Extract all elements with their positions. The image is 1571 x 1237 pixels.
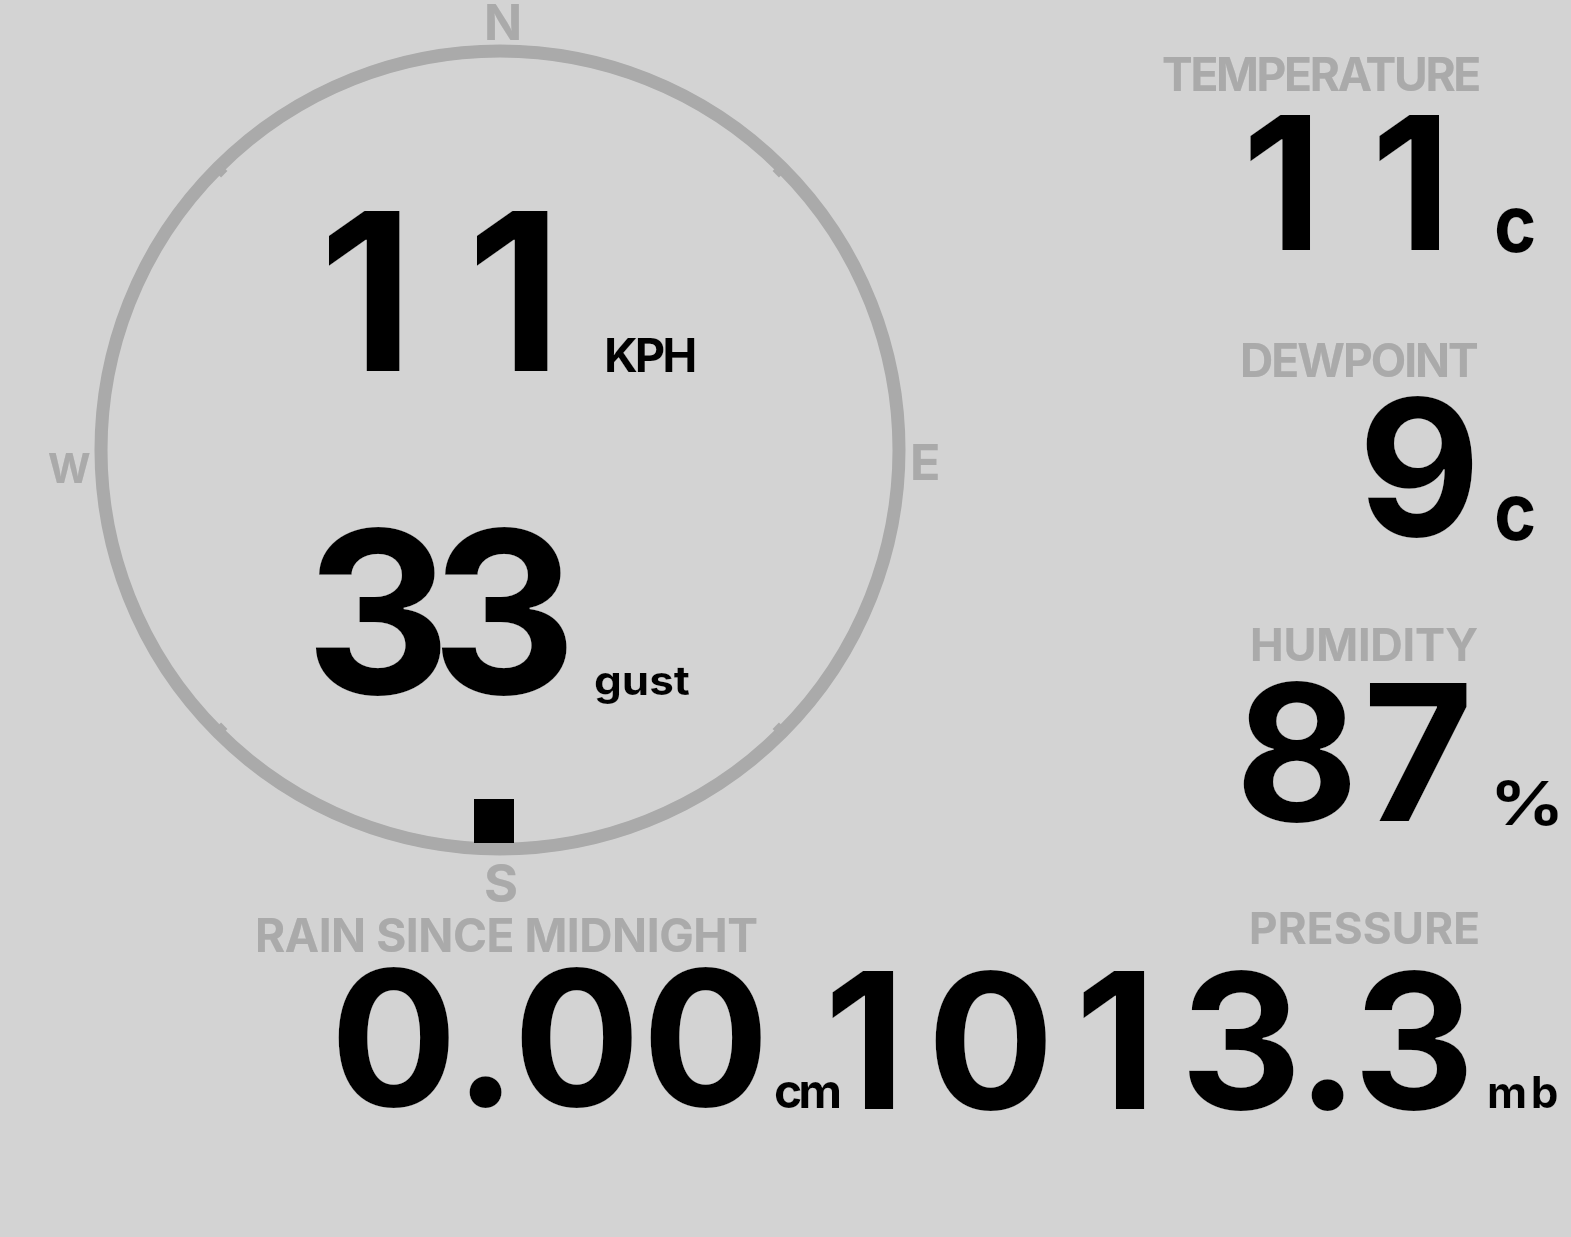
button[interactable]: Pressure 1013.3 mb (880, 895, 1571, 1125)
button[interactable]: Dewpoint 9 C (1100, 300, 1571, 580)
staticText: 3 (1180, 926, 1303, 1155)
staticText: HUMIDITY (1250, 617, 1478, 671)
button[interactable]: Wind 11 KPH gusting 33, compass dial (60, 0, 960, 890)
staticText: 3 (305, 475, 451, 748)
staticText: 7 (1363, 637, 1474, 867)
button[interactable]: Humidity 87 percent (1100, 590, 1571, 870)
staticText: 1 (824, 926, 906, 1155)
staticText: 1 (319, 158, 414, 424)
staticText: 0 (927, 926, 1055, 1155)
staticText: E (910, 432, 941, 492)
staticText: 0 (642, 923, 770, 1152)
staticText: 0 (513, 923, 641, 1152)
staticText: c (1494, 462, 1537, 559)
button[interactable]: Rain since midnight 0.00 cm (180, 895, 860, 1125)
staticText: cm (774, 1061, 839, 1119)
staticText: S (484, 852, 519, 915)
staticText: . (1296, 926, 1360, 1155)
staticText: gust (594, 656, 691, 704)
staticText: DEWPOINT (1240, 332, 1477, 388)
staticText: 3 (431, 475, 577, 748)
staticText: 3 (1353, 926, 1476, 1155)
staticText: 0 (330, 923, 458, 1152)
staticText: N (484, 0, 523, 52)
staticText: KPH (604, 326, 695, 383)
staticText: 8 (1235, 637, 1359, 867)
staticText: 1 (1075, 926, 1157, 1155)
staticText: RAIN SINCE MIDNIGHT (255, 907, 758, 963)
staticText: PRESSURE (1249, 901, 1481, 954)
staticText: 1 (1242, 70, 1323, 295)
staticText: mb (1487, 1065, 1562, 1118)
staticText: c (1494, 174, 1537, 271)
staticText: . (454, 923, 518, 1152)
staticText: W (48, 443, 91, 493)
button[interactable]: Temperature 11 C (1100, 20, 1571, 290)
staticText: TEMPERATURE (1162, 46, 1479, 102)
staticText: 1 (1371, 70, 1452, 295)
staticText: 9 (1358, 353, 1481, 582)
staticText: % (1490, 767, 1564, 840)
staticText: 1 (467, 158, 562, 424)
